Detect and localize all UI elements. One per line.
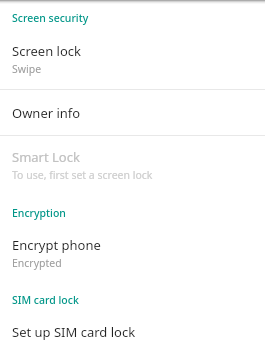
staticText: Screen lock [12, 42, 81, 60]
staticText: SIM card lock [12, 293, 79, 307]
other: Toolbar shadow [0, 0, 265, 4]
button[interactable]: Owner info [0, 104, 265, 122]
button[interactable]: Set up SIM card lock [0, 323, 265, 341]
staticText: Encryption [12, 206, 66, 220]
staticText: Screen security [12, 11, 89, 25]
button[interactable]: Encrypt phone [0, 236, 265, 270]
button[interactable]: Smart Lock [0, 148, 265, 182]
staticText: Encrypt phone [12, 236, 101, 254]
staticText: Swipe [12, 62, 42, 76]
staticText: Set up SIM card lock [12, 323, 136, 341]
button[interactable]: Screen lock [0, 42, 265, 76]
staticText: Encrypted [12, 256, 62, 270]
staticText: Smart Lock [12, 148, 80, 166]
staticText: To use, first set a screen lock [12, 168, 153, 182]
staticText: Owner info [12, 104, 81, 122]
